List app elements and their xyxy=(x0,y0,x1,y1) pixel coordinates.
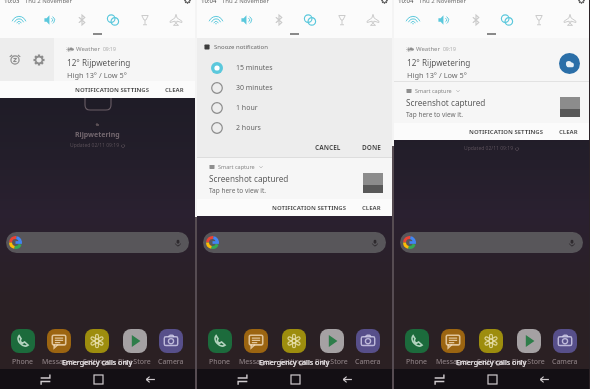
button[interactable]: Back xyxy=(536,371,552,387)
button[interactable]: Settings xyxy=(83,329,110,367)
staticText: Phone xyxy=(209,357,231,367)
button[interactable]: Wi-Fi xyxy=(400,7,426,33)
button[interactable]: Phone xyxy=(208,329,232,367)
button[interactable]: 2 hours xyxy=(197,118,392,138)
staticText: Tap here to view it. xyxy=(406,110,464,119)
button[interactable]: Back xyxy=(339,371,355,387)
staticText: 30 minutes xyxy=(236,83,273,93)
button[interactable]: CANCEL xyxy=(312,140,344,155)
button[interactable]: Sync xyxy=(100,7,126,33)
staticText: 2 hours xyxy=(236,123,261,133)
staticText: Screenshot captured xyxy=(406,97,486,108)
staticText: Emergency calls only xyxy=(456,357,527,367)
button[interactable]: Snooze xyxy=(6,51,24,69)
button[interactable]: Home xyxy=(484,371,500,387)
staticText: NOTIFICATION SETTINGS xyxy=(272,204,347,212)
button[interactable] xyxy=(6,232,189,253)
button[interactable]: Settings xyxy=(280,329,307,367)
staticText: 12° Rijpwetering xyxy=(407,57,471,68)
button[interactable]: Play Store xyxy=(512,329,545,367)
button[interactable]: 1 hour xyxy=(197,98,392,118)
button[interactable]: Sound xyxy=(431,7,457,33)
staticText: Thu 2 November xyxy=(222,0,269,4)
button[interactable]: CLEAR xyxy=(162,83,187,97)
button[interactable]: Sync xyxy=(494,7,520,33)
staticText: Messages xyxy=(436,357,469,367)
button[interactable] xyxy=(203,232,386,253)
button[interactable]: Play Store xyxy=(118,329,151,367)
button[interactable]: Messages xyxy=(436,329,469,367)
button[interactable]: 15 minutes xyxy=(197,58,392,78)
button[interactable]: NOTIFICATION SETTINGS xyxy=(466,125,547,139)
button[interactable]: Recents xyxy=(431,371,447,387)
button[interactable]: Wi-Fi xyxy=(203,7,229,33)
button[interactable]: Flashlight xyxy=(526,7,552,33)
staticText: Rijpwetering xyxy=(75,130,120,140)
button[interactable]: Sound xyxy=(37,7,63,33)
button[interactable]: Sound xyxy=(234,7,260,33)
button[interactable]: Phone xyxy=(405,329,429,367)
staticText: Settings xyxy=(280,357,307,367)
staticText: Settings xyxy=(83,357,110,367)
staticText: 10:04 xyxy=(201,0,217,4)
button[interactable]: Smart capture xyxy=(197,158,392,199)
button[interactable]: Settings xyxy=(477,329,504,367)
button[interactable]: Camera xyxy=(158,329,184,367)
button[interactable]: CLEAR xyxy=(556,125,581,139)
staticText: 10:04 xyxy=(398,0,414,4)
button[interactable]: Home xyxy=(90,371,106,387)
staticText: Camera xyxy=(355,357,381,367)
button[interactable]: CLEAR xyxy=(359,201,384,215)
button[interactable]: Camera xyxy=(552,329,578,367)
button[interactable]: Weather xyxy=(394,38,589,81)
staticText: Camera xyxy=(552,357,578,367)
button[interactable]: Bluetooth xyxy=(69,7,95,33)
staticText: Emergency calls only xyxy=(259,357,330,367)
staticText: CLEAR xyxy=(559,128,578,136)
button[interactable]: Camera xyxy=(355,329,381,367)
staticText: Phone xyxy=(406,357,428,367)
staticText: Weather xyxy=(416,45,440,53)
button[interactable]: Bluetooth xyxy=(266,7,292,33)
button[interactable]: Wi-Fi xyxy=(6,7,32,33)
staticText: Smart capture xyxy=(218,163,255,170)
button[interactable]: Airplane mode xyxy=(557,7,583,33)
button[interactable]: Sync xyxy=(297,7,323,33)
staticText: NOTIFICATION SETTINGS xyxy=(75,86,150,94)
button[interactable]: Phone xyxy=(11,329,35,367)
button[interactable]: Messages xyxy=(239,329,272,367)
staticText: High 13° / Low 5° xyxy=(67,70,127,80)
button[interactable]: NOTIFICATION SETTINGS xyxy=(269,201,350,215)
button[interactable]: Recents xyxy=(234,371,250,387)
button[interactable]: Settings xyxy=(577,0,585,4)
button[interactable]: Airplane mode xyxy=(163,7,189,33)
button[interactable]: DONE xyxy=(359,140,384,155)
staticText: 15 minutes xyxy=(236,63,273,73)
button[interactable]: Smart capture xyxy=(394,82,589,123)
button[interactable]: Settings xyxy=(380,0,388,4)
button[interactable]: Messages xyxy=(42,329,75,367)
button[interactable]: Flashlight xyxy=(329,7,355,33)
button[interactable]: Recents xyxy=(37,371,53,387)
button[interactable]: Weather xyxy=(54,38,195,81)
staticText: CLEAR xyxy=(362,204,381,212)
staticText: CLEAR xyxy=(165,86,184,94)
button[interactable]: Play Store xyxy=(315,329,348,367)
button[interactable]: Home xyxy=(287,371,303,387)
button[interactable]: 30 minutes xyxy=(197,78,392,98)
staticText: 09:19 xyxy=(103,46,116,53)
button[interactable]: Settings xyxy=(183,0,191,4)
staticText: NOTIFICATION SETTINGS xyxy=(469,128,544,136)
staticText: Screenshot captured xyxy=(209,173,289,184)
button[interactable]: Back xyxy=(142,371,158,387)
button[interactable]: Flashlight xyxy=(132,7,158,33)
staticText: Messages xyxy=(239,357,272,367)
button[interactable]: Airplane mode xyxy=(360,7,386,33)
button[interactable]: Settings xyxy=(30,51,48,69)
staticText: Thu 2 November xyxy=(419,0,466,4)
button[interactable] xyxy=(400,232,583,253)
button[interactable]: Bluetooth xyxy=(463,7,489,33)
staticText: Messages xyxy=(42,357,75,367)
staticText: Settings xyxy=(477,357,504,367)
button[interactable]: NOTIFICATION SETTINGS xyxy=(72,83,153,97)
